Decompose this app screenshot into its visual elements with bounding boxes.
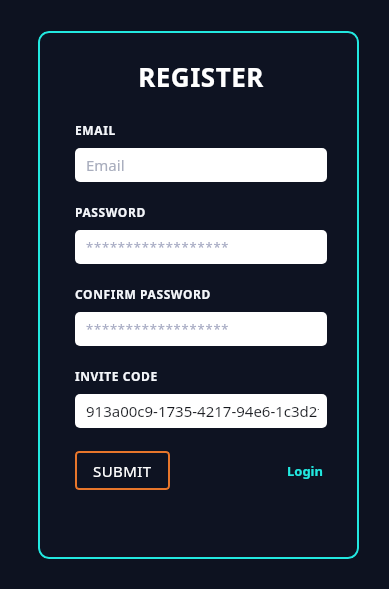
button[interactable]: ****************** [75, 230, 327, 264]
button[interactable]: ****************** [75, 312, 327, 346]
staticText: ****************** [86, 238, 230, 256]
staticText: REGISTER [138, 59, 264, 94]
button[interactable]: 913a00c9-1735-4217-94e6-1c3d2f [75, 394, 327, 428]
button[interactable]: Email [75, 148, 327, 182]
staticText: INVITE CODE [75, 368, 158, 384]
staticText: EMAIL [75, 122, 116, 138]
staticText: PASSWORD [75, 204, 146, 220]
staticText: Login [287, 462, 323, 480]
staticText: SUBMIT [93, 461, 152, 481]
staticText: CONFIRM PASSWORD [75, 286, 211, 302]
staticText: Email [86, 155, 125, 175]
staticText: ****************** [86, 320, 230, 338]
button[interactable]: Login [283, 456, 327, 486]
button[interactable]: SUBMIT [75, 451, 170, 490]
staticText: 913a00c9-1735-4217-94e6-1c3d2f [86, 401, 319, 421]
